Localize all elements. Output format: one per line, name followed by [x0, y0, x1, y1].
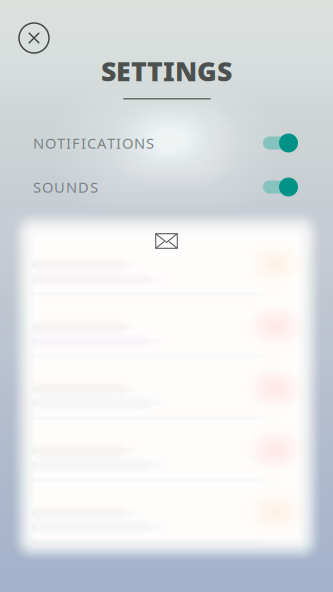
staticText: N O T I F I C A T I O N S: [33, 133, 154, 153]
staticText: S O U N D S: [33, 177, 98, 197]
staticText: SETTINGS: [101, 53, 232, 89]
button[interactable]: S O U N D S: [0, 176, 333, 198]
button[interactable]: Close: [18, 22, 50, 54]
button[interactable]: N O T I F I C A T I O N S: [0, 132, 333, 154]
